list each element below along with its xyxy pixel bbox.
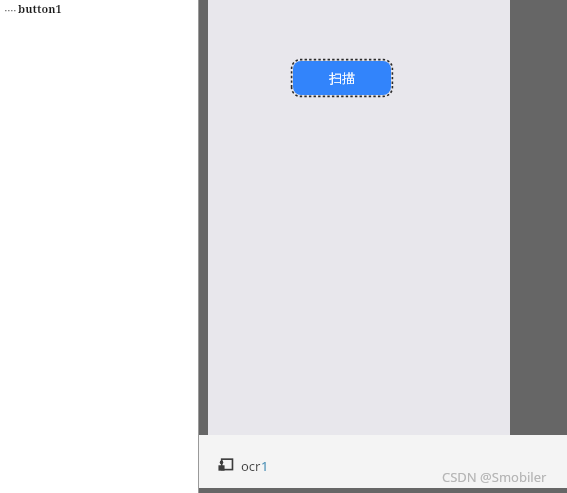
other: ocr1 component	[217, 457, 235, 475]
button[interactable]: ocr1 component	[217, 453, 269, 479]
staticText: button1	[18, 1, 62, 16]
button[interactable]: button1	[4, 1, 62, 16]
staticText: 扫描	[329, 70, 355, 86]
staticText: CSDN @Smobiler	[442, 468, 547, 486]
staticText: ocr	[241, 457, 261, 475]
button[interactable]: 扫描	[291, 59, 393, 97]
staticText: 1	[261, 457, 269, 475]
